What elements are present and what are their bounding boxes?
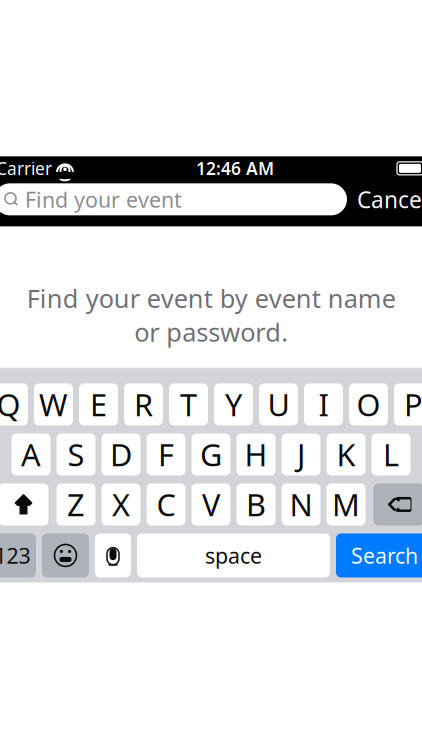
button[interactable]: Shift [0, 483, 48, 525]
staticText: F [158, 434, 174, 475]
staticText: U [267, 384, 289, 425]
staticText: L [383, 434, 399, 475]
staticText: G [200, 434, 222, 475]
staticText: V [202, 484, 220, 525]
button[interactable]: W [34, 383, 73, 425]
button[interactable]: O [349, 383, 388, 425]
button[interactable]: space [137, 533, 330, 577]
button[interactable]: X [101, 483, 140, 525]
staticText: space [205, 541, 262, 570]
button[interactable]: 123 [0, 533, 36, 577]
staticText: Search [351, 541, 418, 570]
staticText: O [356, 384, 380, 425]
staticText: B [246, 484, 266, 525]
staticText: J [297, 434, 305, 475]
staticText: × [396, 493, 406, 516]
button[interactable]: G [191, 433, 230, 475]
button[interactable]: Q [0, 383, 28, 425]
staticText: T [180, 384, 197, 425]
staticText: Carrier [0, 157, 52, 180]
button[interactable]: T [169, 383, 208, 425]
button[interactable]: Y [214, 383, 253, 425]
button[interactable]: P [394, 383, 422, 425]
button[interactable]: Z [56, 483, 95, 525]
button[interactable]: H [236, 433, 275, 475]
button[interactable]: R [124, 383, 163, 425]
staticText: Y [225, 384, 242, 425]
button[interactable]: K [326, 433, 365, 475]
button[interactable]: F [146, 433, 185, 475]
button[interactable]: Emoji [42, 533, 89, 577]
staticText: D [110, 434, 132, 475]
staticText: H [244, 434, 267, 475]
staticText: R [134, 384, 153, 425]
staticText: M [332, 484, 360, 525]
button[interactable]: B [236, 483, 275, 525]
button[interactable]: Cancel [357, 183, 422, 215]
button[interactable]: J [281, 433, 320, 475]
button[interactable]: Dictation [95, 533, 131, 577]
staticText: A [21, 434, 41, 475]
button[interactable]: Search [336, 533, 422, 577]
button[interactable]: E [79, 383, 118, 425]
staticText: Z [67, 484, 85, 525]
button[interactable]: V [191, 483, 230, 525]
button[interactable]: C [146, 483, 185, 525]
button[interactable]: D [101, 433, 140, 475]
staticText: Find your event by event name or passwor… [26, 281, 395, 349]
staticText: 12:46 AM [196, 157, 274, 180]
staticText: E [90, 384, 107, 425]
staticText: I [318, 384, 328, 425]
staticText: Cancel [357, 184, 422, 214]
staticText: N [289, 484, 312, 525]
staticText: S [67, 434, 84, 475]
button[interactable]: U [259, 383, 298, 425]
staticText: K [336, 434, 355, 475]
staticText: Find your event [25, 185, 182, 213]
button[interactable]: I [304, 383, 343, 425]
staticText: 123 [0, 541, 30, 570]
button[interactable]: N [281, 483, 320, 525]
staticText: P [404, 384, 422, 425]
button[interactable]: Delete [373, 483, 422, 525]
staticText: Q [0, 384, 20, 425]
staticText: C [156, 484, 175, 525]
staticText: X [112, 484, 130, 525]
staticText: W [39, 384, 68, 425]
button[interactable]: M [326, 483, 365, 525]
button[interactable]: S [56, 433, 95, 475]
button[interactable]: L [371, 433, 410, 475]
button[interactable]: A [11, 433, 50, 475]
